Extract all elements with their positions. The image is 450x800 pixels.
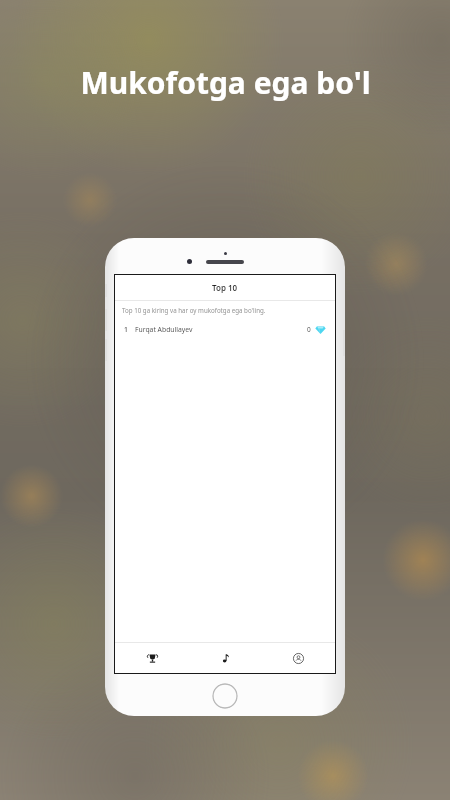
- button[interactable]: 1: [115, 319, 335, 339]
- button[interactable]: Home: [212, 683, 238, 709]
- staticText: 1: [124, 325, 128, 334]
- staticText: Top 10: [212, 282, 238, 293]
- button[interactable]: Profile: [262, 643, 335, 673]
- button[interactable]: Music: [189, 643, 262, 673]
- staticText: Top 10 ga kiring va har oy mukofotga ega…: [122, 306, 266, 314]
- staticText: 0: [307, 325, 311, 334]
- staticText: Mukofotga ega bo'l: [80, 62, 371, 103]
- staticText: Furqat Abdullayev: [135, 325, 193, 334]
- button[interactable]: Top 10 leaderboard: [115, 643, 189, 673]
